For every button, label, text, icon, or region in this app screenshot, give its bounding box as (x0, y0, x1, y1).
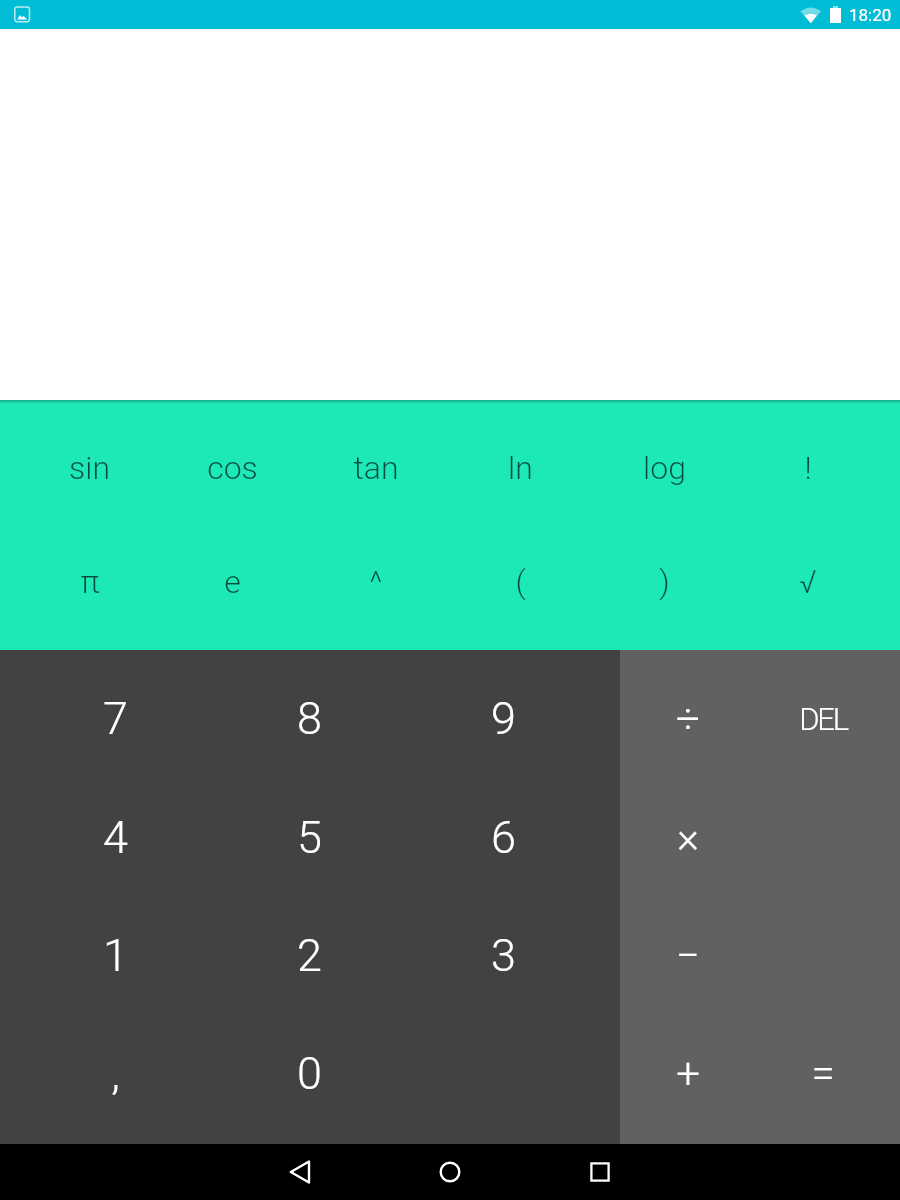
staticText: ÷ (676, 694, 700, 743)
button[interactable]: √ (736, 525, 880, 639)
button[interactable]: Home (422, 1144, 478, 1200)
staticText: √ (799, 563, 817, 601)
button[interactable]: Back (272, 1144, 328, 1200)
staticText: ^ (369, 563, 383, 601)
staticText: e (224, 563, 241, 601)
button[interactable]: × (620, 778, 755, 896)
button[interactable]: ln (448, 411, 592, 525)
button[interactable]: − (620, 896, 755, 1014)
staticText: 0 (297, 1047, 322, 1100)
button[interactable]: sin (18, 411, 161, 525)
staticText: 9 (491, 692, 516, 745)
button[interactable]: DEL (755, 659, 890, 778)
staticText: = (811, 1049, 835, 1098)
staticText: ) (659, 563, 670, 601)
button[interactable]: e (161, 525, 304, 639)
staticText: , (111, 1047, 120, 1100)
staticText: 8 (297, 692, 322, 745)
button[interactable]: ) (592, 525, 736, 639)
staticText: ( (515, 563, 526, 601)
button[interactable]: ^ (304, 525, 448, 639)
button[interactable]: 9 (406, 659, 600, 778)
staticText: 1 (103, 929, 128, 982)
staticText: 4 (103, 811, 128, 864)
button[interactable]: 4 (18, 778, 212, 896)
staticText: log (643, 449, 686, 487)
button[interactable]: 5 (212, 778, 406, 896)
button[interactable]: , (18, 1014, 212, 1132)
button[interactable]: Recent apps (572, 1144, 628, 1200)
staticText: π (80, 563, 100, 601)
button[interactable]: 3 (406, 896, 600, 1014)
button[interactable]: 1 (18, 896, 212, 1014)
button[interactable]: 8 (212, 659, 406, 778)
button[interactable]: 2 (212, 896, 406, 1014)
button[interactable]: 0 (212, 1014, 406, 1132)
button[interactable]: cos (161, 411, 304, 525)
staticText: DEL (799, 701, 847, 737)
staticText: − (676, 931, 700, 980)
staticText: 3 (491, 929, 516, 982)
button[interactable]: ÷ (620, 659, 755, 778)
staticText: 18:20 (849, 5, 892, 25)
staticText: 2 (297, 929, 322, 982)
button[interactable]: = (755, 1014, 890, 1132)
staticText: × (677, 813, 699, 862)
button[interactable]: 7 (18, 659, 212, 778)
button[interactable]: + (620, 1014, 755, 1132)
button[interactable]: 6 (406, 778, 600, 896)
staticText: sin (69, 449, 110, 487)
staticText: 7 (103, 692, 128, 745)
staticText: ! (804, 449, 812, 487)
staticText: cos (207, 449, 258, 487)
staticText: 5 (297, 811, 322, 864)
button[interactable]: ! (736, 411, 880, 525)
staticText: ln (508, 449, 533, 487)
button[interactable]: log (592, 411, 736, 525)
button[interactable]: tan (304, 411, 448, 525)
staticText: tan (353, 449, 399, 487)
button[interactable]: ( (448, 525, 592, 639)
staticText: 6 (491, 811, 516, 864)
button[interactable]: π (18, 525, 161, 639)
staticText: + (676, 1049, 700, 1098)
